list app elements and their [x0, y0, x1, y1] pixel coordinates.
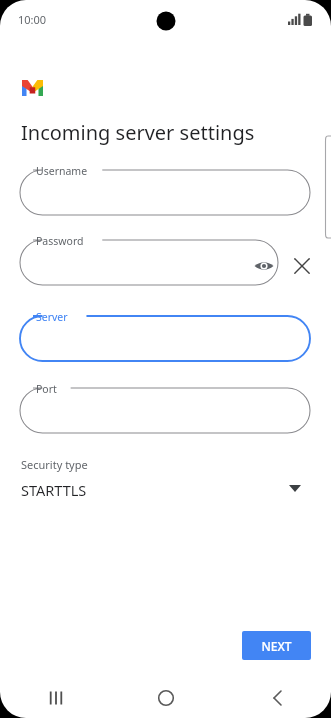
button[interactable]: NEXT [242, 631, 311, 660]
button[interactable]: Security type [0, 452, 331, 510]
button[interactable]: Home [111, 678, 221, 718]
staticText: STARTTLS [21, 480, 87, 500]
staticText: Security type [21, 457, 88, 472]
button[interactable]: Clear password [288, 252, 316, 280]
button[interactable]: Show password [251, 253, 277, 279]
staticText: Server [36, 310, 68, 324]
staticText: 10:00 [18, 12, 47, 27]
button[interactable]: Password [20, 240, 278, 285]
staticText: Incoming server settings [21, 119, 255, 146]
button[interactable]: Server [20, 316, 310, 361]
button[interactable]: Username [20, 170, 310, 215]
staticText: NEXT [261, 638, 292, 654]
button[interactable]: Port [20, 388, 310, 433]
button[interactable]: Back [221, 678, 331, 718]
button[interactable]: Recent apps [0, 678, 111, 718]
staticText: Port [36, 382, 57, 396]
staticText: Username [36, 164, 88, 178]
staticText: Password [36, 234, 84, 248]
